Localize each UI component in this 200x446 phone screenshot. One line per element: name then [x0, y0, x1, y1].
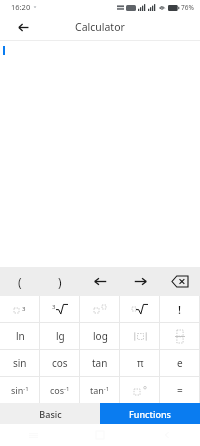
button[interactable]: sin — [0, 350, 40, 376]
staticText: π — [137, 356, 144, 370]
staticText: cos-1 — [50, 384, 70, 396]
staticText: log — [93, 329, 108, 343]
button[interactable]: cos — [40, 350, 80, 376]
button[interactable]: Backspace — [160, 267, 200, 296]
button[interactable]: cube root — [40, 296, 80, 322]
button[interactable]: degree — [120, 377, 160, 403]
button[interactable]: lg — [40, 323, 80, 349]
button[interactable]: log — [80, 323, 120, 349]
button[interactable]: e — [160, 350, 200, 376]
staticText: Basic — [39, 408, 62, 420]
button[interactable]: equals — [160, 377, 200, 403]
staticText: = — [177, 383, 183, 397]
button[interactable]: Functions — [100, 403, 200, 424]
button[interactable]: Basic — [0, 403, 100, 424]
button[interactable]: arccos — [40, 377, 80, 403]
staticText: tan — [92, 356, 108, 370]
button[interactable]: square root — [120, 296, 160, 322]
staticText: ( — [18, 274, 22, 290]
staticText: 76% — [181, 3, 194, 12]
staticText: lg — [56, 329, 65, 343]
staticText: ln — [16, 329, 25, 343]
staticText: 3 — [22, 305, 26, 313]
staticText: ) — [58, 274, 62, 290]
button[interactable]: Back — [12, 16, 34, 38]
button[interactable]: absolute value — [120, 323, 160, 349]
button[interactable]: factorial — [160, 296, 200, 322]
button[interactable]: Move right — [120, 267, 160, 296]
staticText: e — [177, 356, 183, 370]
staticText: sin-1 — [11, 384, 29, 396]
staticText: tan-1 — [90, 384, 110, 396]
button[interactable]: arctan — [80, 377, 120, 403]
staticText: ! — [178, 302, 182, 317]
button[interactable]: ln — [0, 323, 40, 349]
staticText: sin — [13, 356, 27, 370]
button[interactable]: tan — [80, 350, 120, 376]
staticText: Functions — [129, 408, 171, 420]
button[interactable]: arcsin — [0, 377, 40, 403]
button[interactable]: Move left — [80, 267, 120, 296]
button[interactable]: ) — [40, 267, 80, 296]
staticText: 3 — [52, 303, 56, 311]
staticText: cos — [52, 356, 68, 370]
button[interactable]: ( — [0, 267, 40, 296]
button[interactable]: power — [80, 296, 120, 322]
staticText: 16:20 — [11, 2, 31, 12]
button[interactable]: pi — [120, 350, 160, 376]
button[interactable]: fraction — [160, 323, 200, 349]
staticText: Calculator — [75, 20, 125, 34]
button[interactable]: x cubed — [0, 296, 40, 322]
